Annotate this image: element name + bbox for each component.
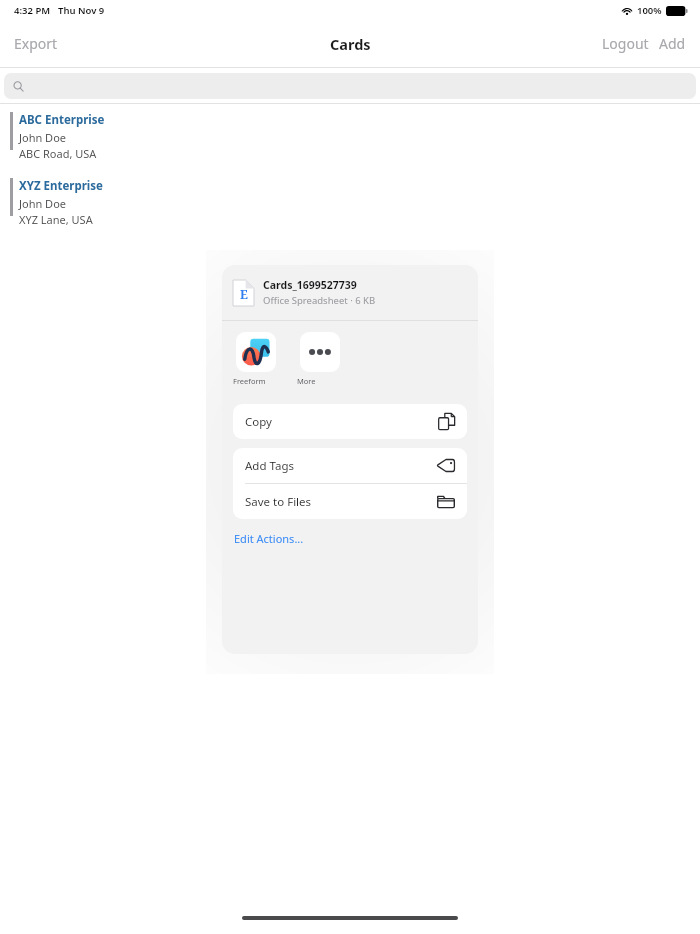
staticText: Logout [602,34,649,53]
staticText: XYZ Lane, USA [19,212,93,227]
button[interactable]: Copy [233,404,467,439]
button[interactable]: Freeform [233,332,279,386]
button[interactable]: Export [0,26,72,61]
button[interactable]: Add [654,26,700,61]
button[interactable]: More [297,332,343,386]
staticText: E [240,286,248,302]
staticText: Copy [245,414,272,430]
staticText: Add [659,34,686,53]
staticText: Save to Files [245,494,312,510]
button[interactable]: E [222,265,478,320]
button[interactable]: Add Tags [233,448,467,483]
staticText: ABC Enterprise [19,112,105,128]
staticText: Cards [330,34,371,54]
staticText: Office Spreadsheet · 6 KB [263,294,376,307]
staticText: John Doe [19,196,67,211]
button[interactable]: XYZ Enterprise [0,178,700,227]
button[interactable]: Edit Actions... [233,528,310,549]
staticText: XYZ Enterprise [19,178,103,194]
staticText: Export [14,34,58,53]
staticText: John Doe [19,130,67,145]
button[interactable]: Save to Files [233,484,467,519]
staticText: Thu Nov 9 [58,4,105,17]
staticText: Freeform [233,376,279,386]
staticText: 100% [637,4,662,17]
staticText: More [297,376,343,386]
staticText: Add Tags [245,458,294,474]
staticText: ABC Road, USA [19,146,97,161]
button[interactable]: Logout [597,26,654,61]
staticText: Cards_1699527739 [263,278,357,292]
staticText: Edit Actions... [234,531,304,546]
button[interactable]: ABC Enterprise [0,112,700,161]
staticText: 4:32 PM [14,4,51,17]
